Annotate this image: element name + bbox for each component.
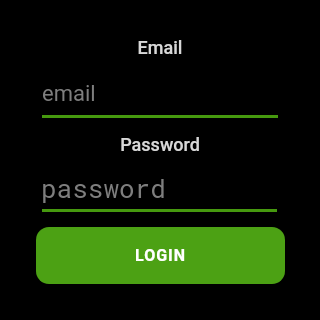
staticText: LOGIN xyxy=(135,246,187,265)
button[interactable]: LOGIN xyxy=(36,227,285,284)
staticText: Password xyxy=(0,134,320,155)
staticText: password xyxy=(41,171,166,205)
button[interactable] xyxy=(42,76,278,117)
staticText: Email xyxy=(0,37,320,58)
staticText: email xyxy=(42,81,96,107)
button[interactable] xyxy=(42,166,277,211)
